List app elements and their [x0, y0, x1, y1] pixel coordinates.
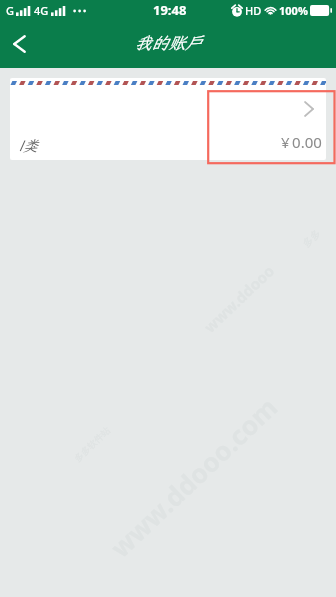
staticText: 19:48: [153, 1, 187, 19]
staticText: 4G: [34, 3, 49, 18]
staticText: HD: [245, 3, 262, 18]
staticText: G: [6, 3, 14, 18]
staticText: 100%: [279, 3, 308, 18]
staticText: I类: [18, 136, 38, 156]
other: Open account detail: [303, 100, 315, 118]
staticText: 我的账户: [134, 31, 202, 53]
staticText: ¥ 0.00: [281, 132, 322, 152]
button[interactable]: I类: [10, 78, 326, 160]
button[interactable]: Back: [0, 21, 40, 68]
